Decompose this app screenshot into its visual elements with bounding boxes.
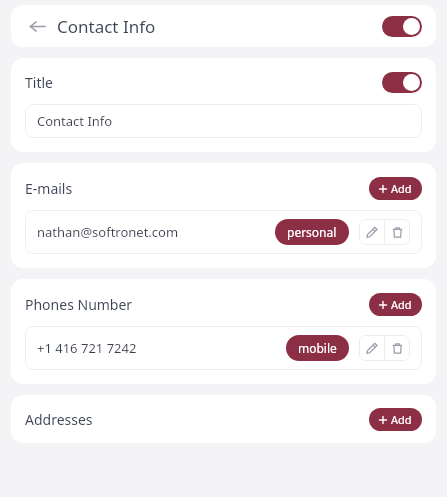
button[interactable]: Edit (359, 219, 384, 245)
button[interactable]: Toggle (382, 16, 422, 37)
button[interactable]: Edit (359, 335, 384, 361)
staticText: mobile (298, 340, 337, 356)
button[interactable]: Add (369, 293, 422, 316)
button[interactable]: +1 416 721 7242 (25, 326, 422, 370)
staticText: nathan@softronet.com (37, 223, 275, 241)
staticText: Add (391, 412, 412, 427)
button[interactable]: nathan@softronet.com (25, 210, 422, 254)
staticText: Title (25, 73, 53, 92)
staticText: Contact Info (37, 112, 113, 130)
staticText: Addresses (25, 410, 93, 429)
staticText: E-mails (25, 179, 73, 198)
button[interactable]: Contact Info (25, 104, 422, 138)
button[interactable]: mobile (286, 335, 349, 361)
staticText: Phones Number (25, 295, 133, 314)
staticText: Contact Info (57, 15, 382, 38)
staticText: Add (391, 297, 412, 312)
button[interactable]: personal (275, 219, 349, 245)
button[interactable]: Toggle (382, 72, 422, 93)
staticText: +1 416 721 7242 (37, 339, 286, 357)
staticText: personal (287, 224, 337, 240)
button[interactable]: Delete (385, 219, 410, 245)
button[interactable]: Add (369, 177, 422, 200)
staticText: Add (391, 181, 412, 196)
button[interactable]: Delete (385, 335, 410, 361)
button[interactable]: Add (369, 408, 422, 431)
button[interactable]: Back (25, 14, 49, 38)
